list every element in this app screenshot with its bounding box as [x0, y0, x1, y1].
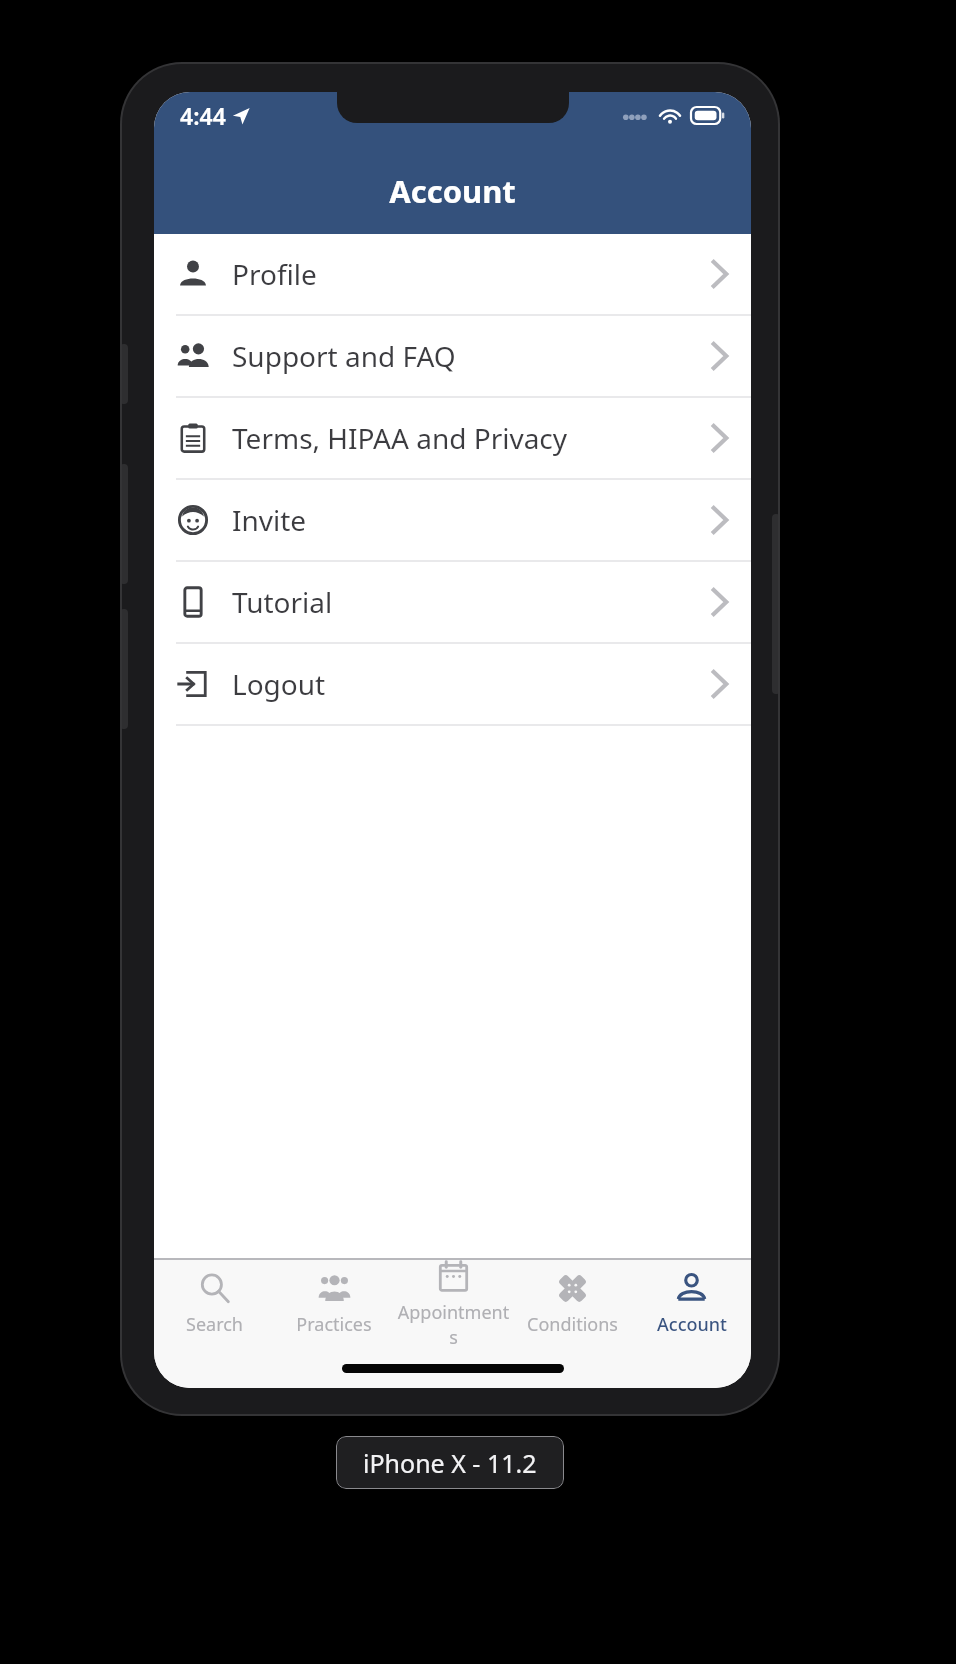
button[interactable]: Invite	[154, 480, 751, 560]
button[interactable]: Terms, HIPAA and Privacy	[154, 398, 751, 478]
button[interactable]: Account	[632, 1260, 751, 1348]
staticText: Profile	[232, 255, 317, 293]
staticText: Terms, HIPAA and Privacy	[232, 419, 568, 457]
staticText: Logout	[232, 665, 326, 703]
staticText: Support and FAQ	[232, 337, 456, 375]
staticText: Search	[186, 1312, 243, 1337]
staticText: 4:44	[180, 100, 226, 131]
staticText: Tutorial	[232, 583, 333, 621]
button[interactable]: Conditions	[513, 1260, 632, 1348]
button[interactable]: Search	[154, 1260, 274, 1348]
button[interactable]: Appointments	[394, 1260, 513, 1348]
staticText: Practices	[296, 1312, 372, 1337]
button[interactable]: Profile	[154, 234, 751, 314]
button[interactable]: Logout	[154, 644, 751, 724]
staticText: Conditions	[527, 1312, 618, 1337]
button[interactable]: Tutorial	[154, 562, 751, 642]
button[interactable]: Practices	[274, 1260, 394, 1348]
staticText: Invite	[232, 501, 307, 539]
button[interactable]: Support and FAQ	[154, 316, 751, 396]
staticText: Appointments	[394, 1300, 513, 1348]
staticText: Account	[389, 170, 516, 212]
staticText: Account	[657, 1312, 727, 1337]
staticText: iPhone X - 11.2	[363, 1446, 537, 1480]
